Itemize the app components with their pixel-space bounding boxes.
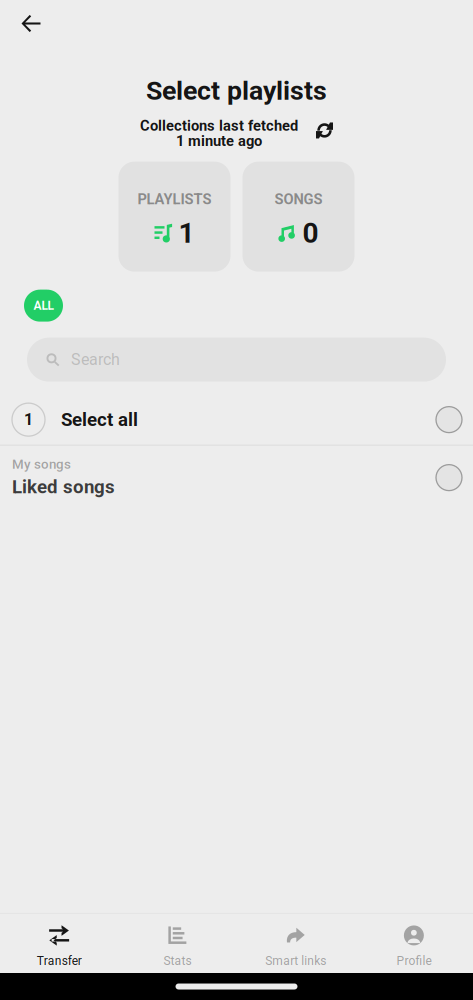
button[interactable]: Transfer xyxy=(0,923,118,968)
staticText: ALL xyxy=(33,299,53,313)
staticText: 1 minute ago xyxy=(176,132,262,150)
staticText: Select all xyxy=(61,409,138,431)
button[interactable]: Search xyxy=(27,338,446,382)
staticText: 1 xyxy=(178,217,194,250)
button[interactable]: 1 xyxy=(0,395,473,445)
staticText: Search xyxy=(71,350,120,369)
button[interactable]: Profile xyxy=(355,923,473,968)
staticText: My songs xyxy=(12,456,71,472)
staticText: Liked songs xyxy=(12,476,115,498)
staticText: Smart links xyxy=(265,954,326,968)
button[interactable]: Stats xyxy=(118,923,236,968)
button[interactable]: Smart links xyxy=(236,923,355,968)
staticText: PLAYLISTS xyxy=(137,191,211,208)
staticText: Stats xyxy=(163,954,191,968)
staticText: SONGS xyxy=(274,191,322,208)
button[interactable]: Refresh collections xyxy=(316,122,333,138)
staticText: 1 xyxy=(24,410,33,429)
staticText: Profile xyxy=(396,954,431,968)
staticText: Select playlists xyxy=(146,75,327,106)
staticText: Collections last fetched xyxy=(140,117,298,134)
button[interactable]: My songs xyxy=(0,446,473,500)
button[interactable]: Back xyxy=(10,4,52,42)
button[interactable]: ALL xyxy=(24,290,63,322)
staticText: 0 xyxy=(302,217,318,250)
staticText: Transfer xyxy=(37,954,82,968)
